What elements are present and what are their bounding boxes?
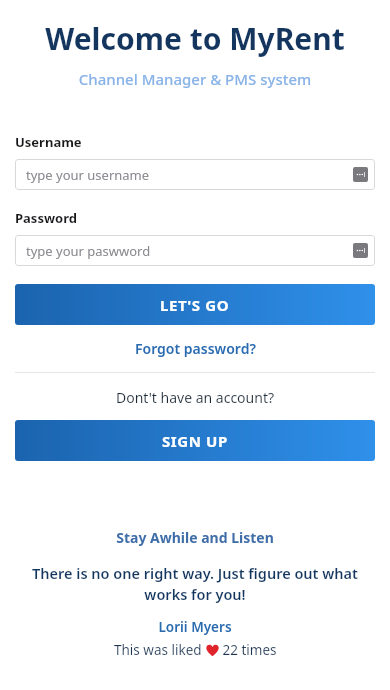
staticText: SIGN UP [162,431,228,451]
staticText: type your paswword [26,242,151,260]
staticText: Forgot password? [135,339,256,358]
button[interactable]: LET'S GO [15,284,375,325]
staticText: Lorii Myers [15,618,375,636]
staticText: This was liked [114,641,206,659]
button[interactable]: type your paswword [15,235,375,266]
staticText: 22 times [219,641,277,659]
button[interactable]: SIGN UP [15,420,375,461]
staticText: Username [15,133,82,151]
staticText: Dont't have an account? [15,388,375,407]
staticText: LET'S GO [160,295,230,315]
staticText: Stay Awhile and Listen [15,528,375,547]
staticText: Welcome to MyRent [0,18,390,59]
button[interactable]: Show password keyboard [353,243,368,258]
button[interactable]: Forgot password? [15,334,375,363]
staticText: Password [15,209,77,227]
staticText: type your username [26,166,150,184]
staticText: There is no one right way. Just figure o… [21,563,369,605]
staticText: Channel Manager & PMS system [0,69,390,89]
button[interactable]: type your username [15,159,375,190]
button[interactable]: Show username keyboard [353,167,368,182]
